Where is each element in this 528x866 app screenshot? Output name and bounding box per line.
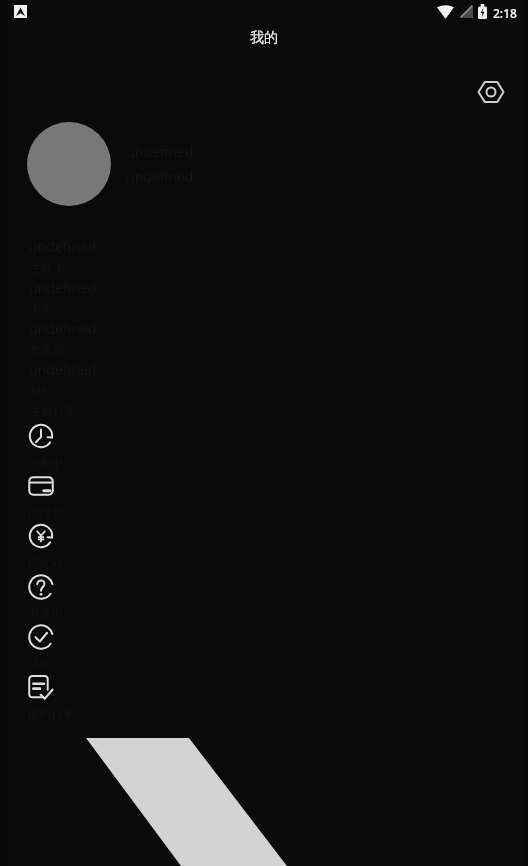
button[interactable]: 预约订单 <box>27 673 75 721</box>
button[interactable]: 待付款 <box>27 472 63 520</box>
button[interactable]: 申请中 <box>27 573 63 621</box>
staticText: 2:18 <box>493 5 517 21</box>
staticText: 我的 <box>250 29 278 47</box>
button[interactable]: 待发款 <box>27 522 63 570</box>
button[interactable]: Settings <box>469 70 513 114</box>
button[interactable]: 待审中 <box>27 422 63 470</box>
button[interactable]: undefined <box>27 122 194 206</box>
button[interactable]: 成功 <box>27 623 55 671</box>
